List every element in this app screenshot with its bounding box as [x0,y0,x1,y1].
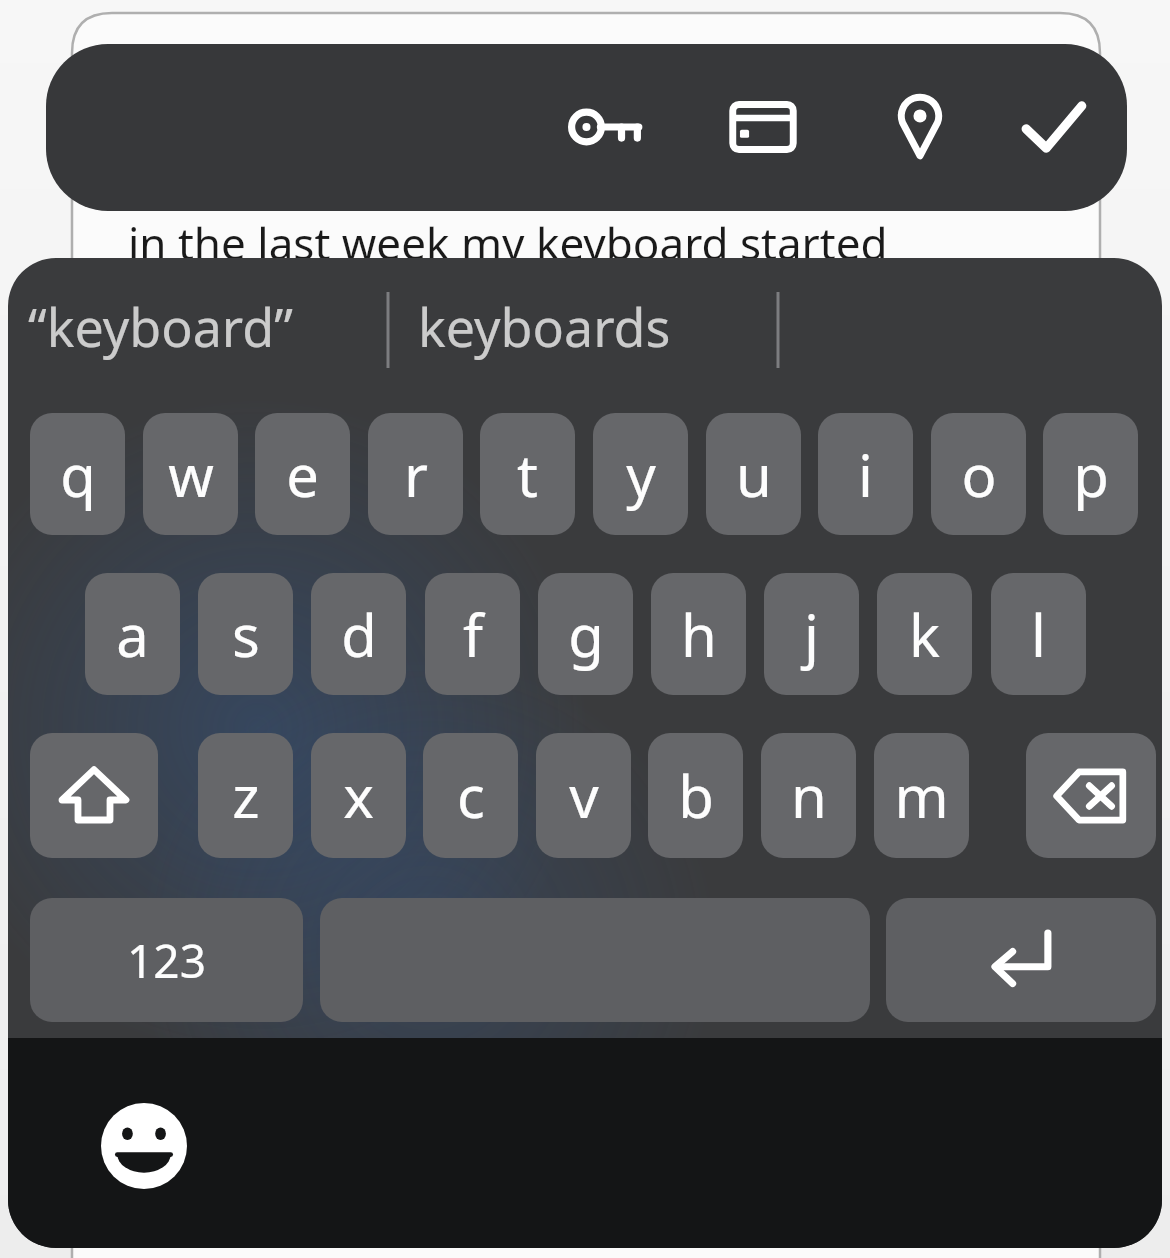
staticText: w [168,435,214,514]
button[interactable]: r [368,413,463,535]
staticText: v [569,756,599,835]
staticText: o [961,435,997,514]
staticText: r [404,435,428,514]
button[interactable]: p [1043,413,1138,535]
button[interactable]: Address [872,79,968,175]
button[interactable]: keyboards [418,278,768,374]
button[interactable]: z [198,733,293,858]
staticText: z [232,756,260,835]
button[interactable]: Emoji [96,1098,192,1194]
button[interactable]: Backspace [1026,733,1156,858]
button[interactable]: Passwords [562,79,658,175]
staticText: f [463,595,483,674]
staticText: a [116,595,149,674]
staticText: n [791,756,827,835]
button[interactable]: c [423,733,518,858]
staticText: x [343,756,374,835]
button[interactable]: g [538,573,633,695]
staticText: k [909,595,940,674]
staticText: t [517,435,538,514]
staticText: c [457,756,485,835]
button[interactable]: m [874,733,969,858]
button[interactable]: f [425,573,520,695]
button[interactable]: x [311,733,406,858]
button[interactable]: q [30,413,125,535]
button[interactable]: b [648,733,743,858]
button[interactable]: o [931,413,1026,535]
button[interactable]: l [991,573,1086,695]
staticText: in the last week my keyboard started [128,213,888,273]
button[interactable]: y [593,413,688,535]
staticText: m [894,756,949,835]
staticText: d [341,595,377,674]
button[interactable]: i [818,413,913,535]
button[interactable]: v [536,733,631,858]
staticText: 123 [127,929,206,992]
button[interactable]: e [255,413,350,535]
staticText: u [736,435,772,514]
staticText: l [1031,595,1046,674]
staticText: q [60,435,96,514]
button[interactable]: s [198,573,293,695]
staticText: p [1073,435,1109,514]
button[interactable]: t [480,413,575,535]
staticText: j [804,595,819,674]
button[interactable]: h [651,573,746,695]
button[interactable]: Autofill [1005,79,1101,175]
button[interactable]: Shift [30,733,158,858]
button[interactable]: k [877,573,972,695]
staticText: b [678,756,714,835]
staticText: i [858,435,873,514]
staticText: s [232,595,260,674]
button[interactable]: u [706,413,801,535]
staticText: y [626,435,656,514]
staticText: g [568,595,604,674]
staticText: keyboards [418,291,671,362]
button[interactable]: w [143,413,238,535]
button[interactable]: “keyboard” [28,278,378,374]
staticText: e [286,435,319,514]
button[interactable]: d [311,573,406,695]
button[interactable]: 123 [30,898,303,1022]
button[interactable]: Enter [886,898,1156,1022]
button[interactable]: n [761,733,856,858]
button[interactable]: Payment methods [715,79,811,175]
button[interactable]: a [85,573,180,695]
staticText: h [681,595,717,674]
staticText: “keyboard” [28,291,293,362]
button[interactable]: j [764,573,859,695]
